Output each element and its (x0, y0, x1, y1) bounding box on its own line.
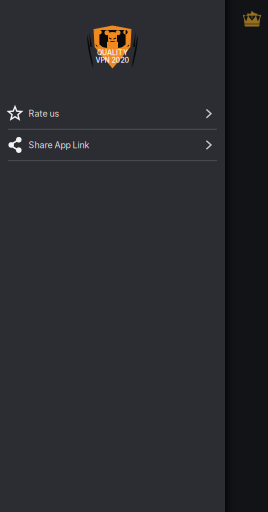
staticText: VPN 2020 (95, 56, 129, 64)
button[interactable]: Share App Link (0, 130, 225, 161)
staticText: Rate us (28, 108, 59, 119)
button[interactable]: Rate us (0, 98, 225, 130)
staticText: Share App Link (28, 140, 89, 150)
staticText: QUALITY (97, 48, 128, 57)
